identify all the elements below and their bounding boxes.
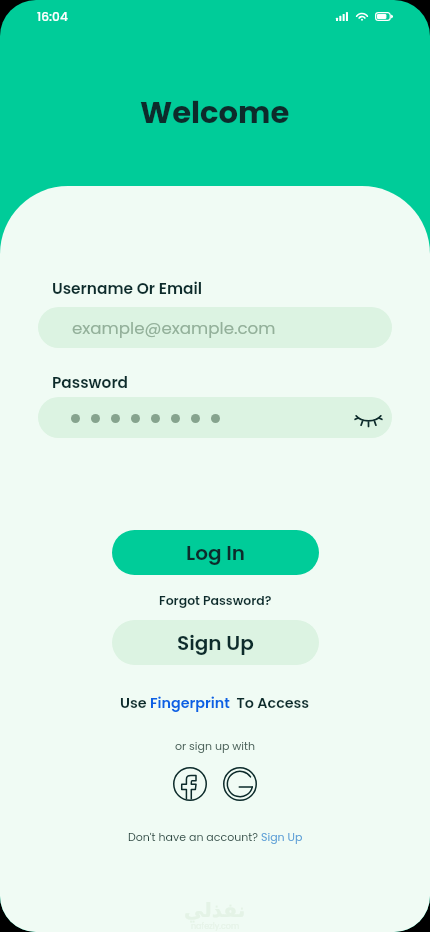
button[interactable]: Show password bbox=[38, 397, 392, 438]
button[interactable]: Sign Up bbox=[112, 620, 319, 665]
button[interactable]: Show password bbox=[351, 401, 385, 435]
staticText: نفذلي bbox=[184, 898, 246, 921]
staticText: Username Or Email bbox=[52, 278, 202, 300]
staticText: Password bbox=[52, 372, 129, 394]
button[interactable]: Don't have an account? Sign Up bbox=[122, 827, 309, 846]
staticText: 16:04 bbox=[37, 8, 68, 25]
button[interactable]: Use Fingerprint To Access bbox=[114, 691, 316, 715]
button[interactable]: Sign in with Google bbox=[223, 767, 257, 801]
staticText: Forgot Password? bbox=[159, 592, 272, 609]
staticText: Sign Up bbox=[177, 629, 254, 657]
staticText: Use Fingerprint To Access bbox=[120, 693, 310, 713]
staticText: nafezly.com bbox=[191, 921, 240, 932]
staticText: example@example.com bbox=[72, 316, 276, 339]
button[interactable]: example@example.com bbox=[38, 307, 392, 348]
staticText: Don't have an account? Sign Up bbox=[128, 829, 303, 844]
staticText: or sign up with bbox=[175, 738, 256, 753]
staticText: Welcome bbox=[140, 91, 290, 134]
button[interactable]: Sign in with Facebook bbox=[173, 767, 207, 801]
staticText: Log In bbox=[186, 539, 246, 567]
button[interactable]: Forgot Password? bbox=[153, 590, 278, 611]
button[interactable]: Log In bbox=[112, 530, 319, 575]
